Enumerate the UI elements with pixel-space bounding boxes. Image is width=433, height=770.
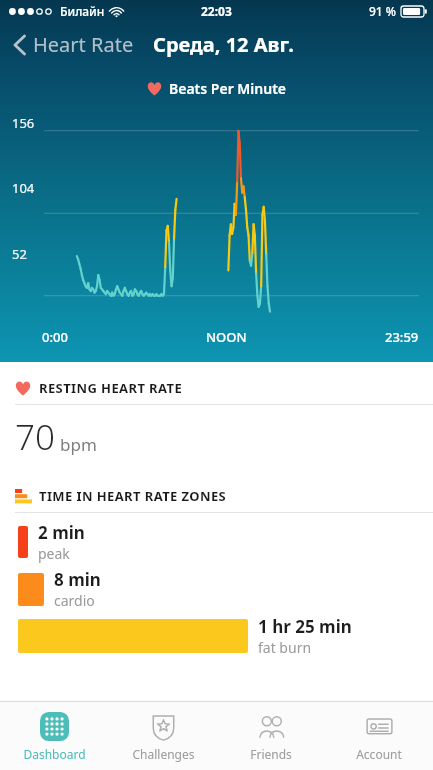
staticText: fat burn [258, 638, 312, 657]
button[interactable]: 1 hr 25 min [0, 615, 433, 657]
staticText: 156 [12, 114, 35, 132]
other: Dashboard [39, 711, 70, 742]
staticText: Challenges [132, 746, 195, 762]
button[interactable]: 2 min [0, 521, 433, 563]
button[interactable]: 8 min [0, 568, 433, 610]
staticText: TIME IN HEART RATE ZONES [39, 487, 227, 505]
button[interactable]: Friends [217, 702, 325, 770]
staticText: 91 % [369, 3, 397, 19]
staticText: 22:03 [201, 3, 232, 19]
staticText: Beats Per Minute [169, 79, 287, 98]
staticText: Account [356, 746, 402, 762]
staticText: bpm [60, 433, 97, 456]
staticText: Билайн [60, 3, 105, 19]
other: Account [364, 711, 395, 742]
staticText: peak [38, 544, 70, 563]
other: Challenges [148, 711, 179, 742]
button[interactable]: Dashboard [0, 702, 109, 770]
button[interactable]: Challenges [109, 702, 217, 770]
staticText: 23:59 [385, 328, 419, 346]
button[interactable]: Account [325, 702, 433, 770]
staticText: 2 min [38, 521, 85, 544]
staticText: Friends [250, 746, 292, 762]
staticText: NOON [206, 328, 247, 346]
staticText: cardio [54, 591, 95, 610]
staticText: 70 [15, 413, 55, 461]
staticText: 1 hr 25 min [258, 615, 352, 638]
button[interactable]: RESTING HEART RATE [0, 379, 433, 461]
staticText: 0:00 [42, 328, 68, 346]
staticText: Среда, 12 Авг. [153, 31, 294, 58]
staticText: Dashboard [23, 746, 86, 762]
staticText: Heart Rate [33, 31, 134, 58]
staticText: 8 min [54, 568, 101, 591]
other: Friends [256, 711, 287, 742]
staticText: 104 [12, 179, 35, 197]
staticText: 52 [12, 245, 27, 263]
staticText: RESTING HEART RATE [39, 379, 183, 397]
button[interactable]: Back to Heart Rate [6, 25, 141, 64]
